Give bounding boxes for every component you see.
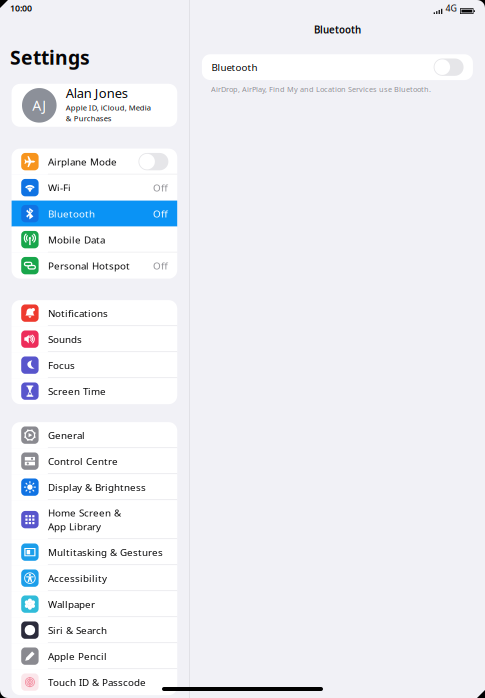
- button[interactable]: Display & Brightness: [12, 474, 177, 500]
- staticText: Off: [153, 259, 168, 272]
- staticText: 4G: [445, 2, 456, 14]
- staticText: App Library: [48, 520, 101, 533]
- staticText: Focus: [48, 358, 75, 372]
- staticText: Apple Pencil: [48, 649, 107, 663]
- staticText: 10:00: [10, 2, 32, 14]
- button[interactable]: Airplane Mode: [12, 149, 177, 175]
- staticText: Wallpaper: [48, 597, 95, 611]
- button[interactable]: Home Screen &: [12, 500, 177, 539]
- button[interactable]: Focus: [12, 352, 177, 378]
- staticText: Wi-Fi: [48, 181, 71, 194]
- button[interactable]: Control Centre: [12, 448, 177, 474]
- staticText: Multitasking & Gestures: [48, 545, 163, 559]
- staticText: Alan Jones: [66, 84, 128, 102]
- button[interactable]: Wallpaper: [12, 591, 177, 617]
- staticText: General: [48, 428, 85, 442]
- button[interactable]: Sounds: [12, 326, 177, 352]
- button[interactable]: Bluetooth: [12, 201, 177, 227]
- staticText: Siri & Search: [48, 623, 107, 637]
- button[interactable]: Mobile Data: [12, 227, 177, 253]
- staticText: Settings: [10, 44, 90, 70]
- staticText: Apple ID, iCloud, Media: [66, 102, 151, 113]
- staticText: Control Centre: [48, 454, 118, 468]
- staticText: Off: [153, 207, 168, 220]
- staticText: AirDrop, AirPlay, Find My and Location S…: [211, 84, 431, 94]
- staticText: Screen Time: [48, 384, 106, 398]
- button[interactable]: Multitasking & Gestures: [12, 539, 177, 565]
- staticText: Off: [153, 181, 168, 194]
- staticText: Personal Hotspot: [48, 259, 130, 272]
- staticText: Accessibility: [48, 571, 107, 585]
- staticText: Airplane Mode: [48, 155, 117, 168]
- staticText: Bluetooth: [314, 23, 361, 36]
- button[interactable]: Touch ID & Passcode: [12, 669, 177, 695]
- staticText: Mobile Data: [48, 233, 105, 246]
- staticText: AJ: [32, 96, 46, 115]
- button[interactable]: Notifications: [12, 300, 177, 326]
- button[interactable]: Apple Pencil: [12, 643, 177, 669]
- staticText: Notifications: [48, 306, 108, 320]
- staticText: Home Screen &: [48, 506, 121, 519]
- button[interactable]: Screen Time: [12, 378, 177, 404]
- staticText: & Purchases: [66, 113, 112, 123]
- button[interactable]: Bluetooth: [202, 54, 473, 80]
- button[interactable]: Siri & Search: [12, 617, 177, 643]
- staticText: Sounds: [48, 332, 82, 346]
- button[interactable]: General: [12, 422, 177, 448]
- button[interactable]: AJ: [12, 84, 177, 127]
- staticText: Touch ID & Passcode: [48, 675, 146, 689]
- button[interactable]: Personal Hotspot: [12, 253, 177, 279]
- button[interactable]: Wi-Fi: [12, 175, 177, 201]
- button[interactable]: Accessibility: [12, 565, 177, 591]
- staticText: Bluetooth: [211, 60, 257, 74]
- staticText: Bluetooth: [48, 207, 95, 220]
- staticText: Display & Brightness: [48, 480, 146, 494]
